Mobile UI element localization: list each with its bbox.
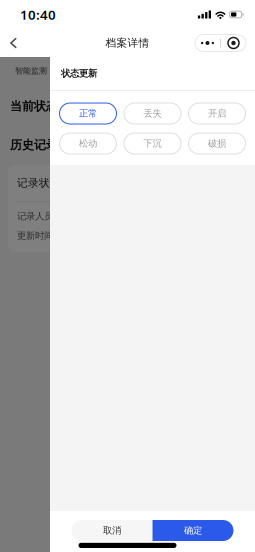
button[interactable]: 破损	[188, 133, 245, 154]
button[interactable]: 松动	[59, 133, 116, 154]
staticText: 记录人员	[17, 210, 53, 222]
staticText: 档案详情	[105, 36, 149, 49]
staticText: 状态更新	[61, 68, 97, 79]
button[interactable]: 开启	[188, 103, 245, 124]
button[interactable]: 取消	[71, 520, 152, 541]
staticText: 取消	[103, 525, 121, 536]
button[interactable]: 更多	[195, 34, 220, 51]
staticText: 松动	[79, 138, 97, 149]
staticText: 智能监测	[15, 66, 47, 76]
button[interactable]: 丢失	[124, 103, 181, 124]
staticText: 更新时间	[17, 230, 53, 241]
staticText: 当前状态	[10, 99, 58, 113]
staticText: 记录状态	[17, 176, 61, 189]
staticText: 10:40	[20, 6, 56, 23]
button[interactable]: 返回	[3, 32, 24, 54]
staticText: 正常	[79, 108, 97, 119]
staticText: 历史记录	[10, 138, 58, 152]
button[interactable]: 确定	[152, 520, 233, 541]
staticText: 开启	[208, 108, 226, 119]
staticText: 确定	[184, 525, 202, 536]
button[interactable]: 胶囊菜单	[221, 34, 246, 51]
staticText: 下沉	[143, 138, 161, 149]
staticText: 丢失	[143, 108, 161, 119]
staticText: 破损	[208, 138, 226, 149]
button[interactable]: 正常	[59, 103, 116, 124]
button[interactable]: 下沉	[124, 133, 181, 154]
